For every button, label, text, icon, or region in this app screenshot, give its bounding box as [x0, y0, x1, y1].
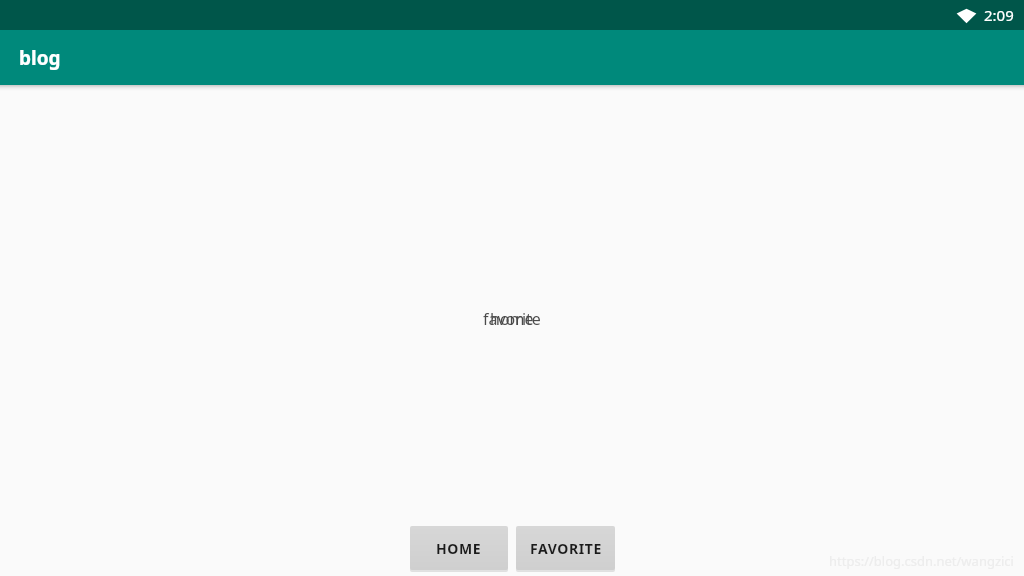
staticText: https://blog.csdn.net/wangzici: [829, 552, 1014, 570]
staticText: blog: [19, 45, 61, 71]
button[interactable]: HOME: [410, 526, 508, 570]
staticText: favorite: [483, 308, 541, 330]
staticText: HOME: [436, 539, 482, 558]
staticText: home: [490, 308, 534, 330]
button[interactable]: FAVORITE: [516, 526, 615, 570]
staticText: 2:09: [984, 5, 1014, 25]
staticText: FAVORITE: [530, 539, 602, 558]
